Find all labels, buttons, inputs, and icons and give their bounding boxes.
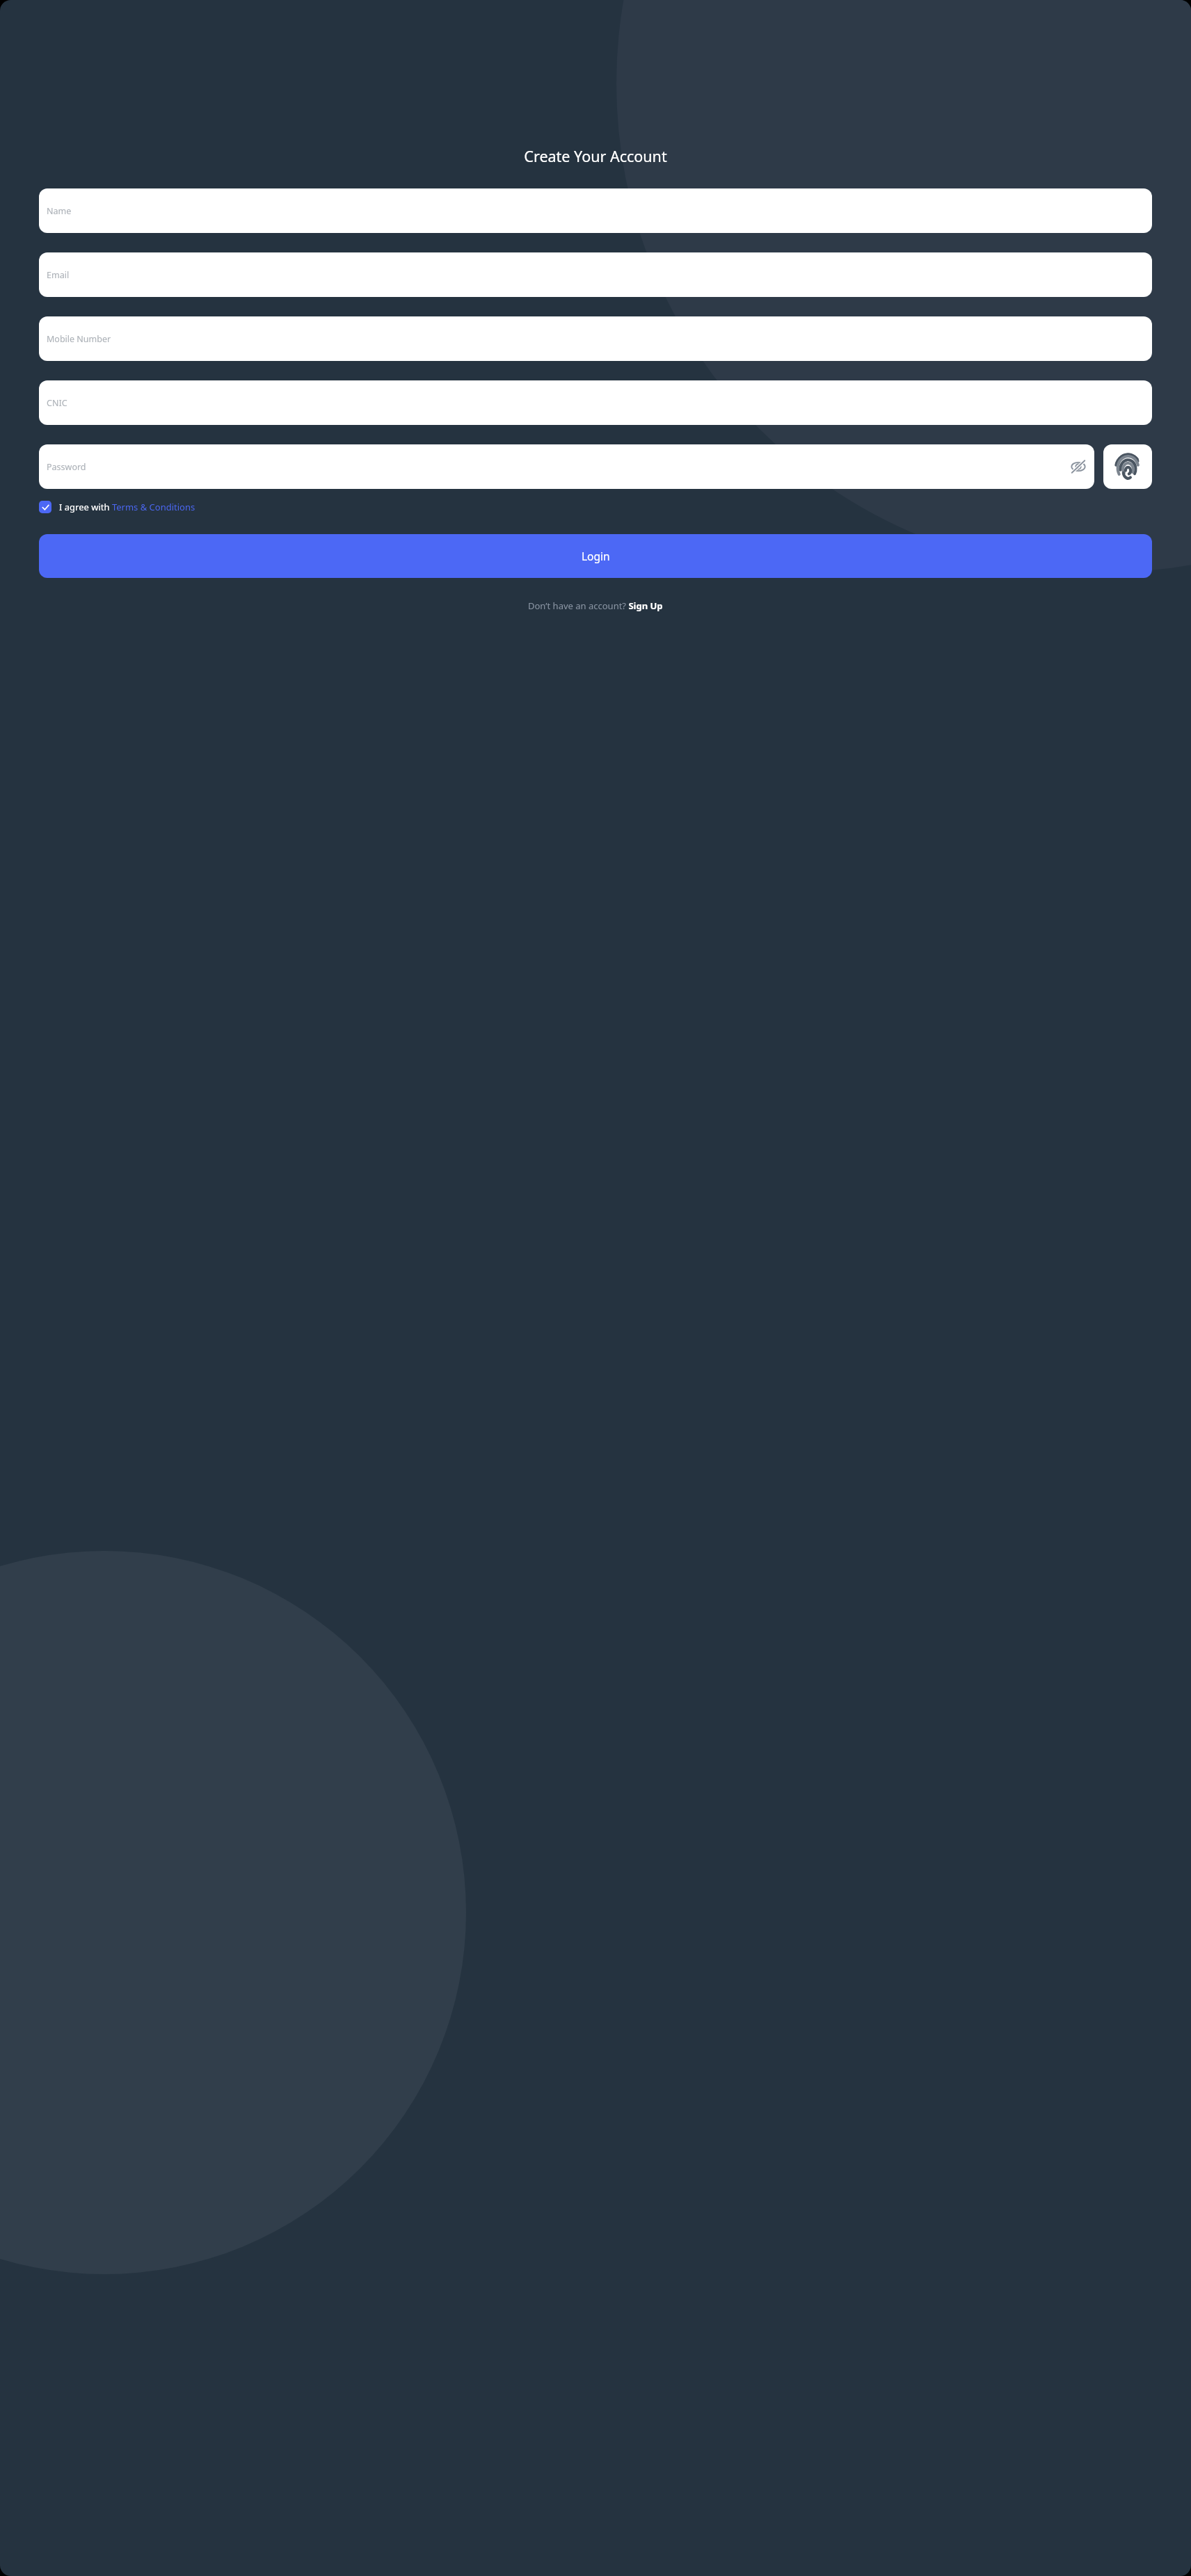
button[interactable]: Email xyxy=(39,252,1152,297)
staticText: Mobile Number xyxy=(47,333,111,345)
staticText: Create Your Account xyxy=(524,146,667,166)
button[interactable]: Fingerprint login xyxy=(1103,444,1152,489)
button[interactable]: Don’t have an account? Sign Up xyxy=(528,599,663,612)
button[interactable]: Login xyxy=(39,534,1152,578)
button[interactable]: Password xyxy=(39,444,1094,489)
staticText: Password xyxy=(47,461,86,473)
staticText: Name xyxy=(47,205,72,217)
button[interactable]: Name xyxy=(39,188,1152,233)
button[interactable]: Mobile Number xyxy=(39,316,1152,361)
button[interactable]: Show password xyxy=(1070,458,1087,475)
staticText: Email xyxy=(47,269,70,281)
staticText: Don’t have an account? Sign Up xyxy=(528,599,663,612)
button[interactable]: CNIC xyxy=(39,380,1152,425)
staticText: I agree with Terms & Conditions xyxy=(59,501,195,513)
staticText: Login xyxy=(582,549,610,563)
staticText: CNIC xyxy=(47,397,67,409)
button[interactable]: I agree with Terms & Conditions xyxy=(39,501,1152,513)
